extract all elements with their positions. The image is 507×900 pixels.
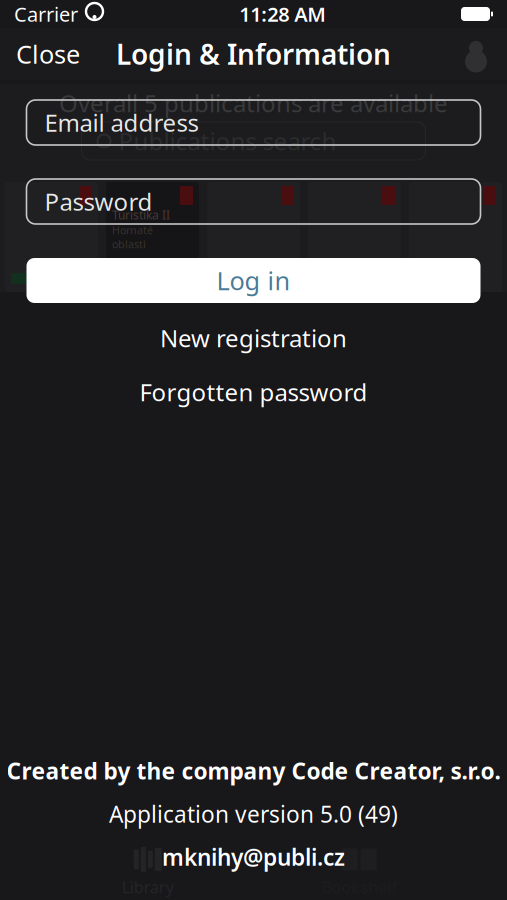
- staticText: Created by the company Code Creator, s.r…: [6, 756, 500, 786]
- button[interactable]: Close: [0, 32, 96, 76]
- button[interactable]: Log in: [26, 258, 480, 303]
- staticText: Carrier: [14, 1, 78, 27]
- staticText: Log in: [216, 264, 290, 297]
- staticText: Hornaté oblasti: [112, 223, 153, 251]
- button[interactable]: mknihy@publi.cz: [162, 842, 345, 872]
- button[interactable]: Password: [26, 179, 480, 224]
- staticText: Overall 5 publications are available: [59, 87, 448, 119]
- staticText: mknihy@publi.cz: [162, 842, 345, 872]
- staticText: Login & Information: [116, 35, 391, 73]
- staticText: Close: [16, 37, 80, 71]
- staticText: Turistika II: [112, 207, 170, 223]
- button[interactable]: Forgotten password: [26, 378, 480, 406]
- staticText: Application version 5.0 (49): [109, 799, 398, 829]
- staticText: Forgotten password: [139, 376, 367, 408]
- staticText: Email address: [44, 107, 198, 138]
- staticText: 11:28 AM: [239, 1, 326, 27]
- staticText: New registration: [160, 322, 347, 354]
- staticText: Library: [122, 876, 174, 898]
- staticText: Password: [44, 186, 152, 217]
- staticText: Publications search: [118, 125, 336, 157]
- button[interactable]: Account: [445, 32, 507, 76]
- button[interactable]: Email address: [26, 100, 480, 145]
- button[interactable]: New registration: [26, 324, 480, 352]
